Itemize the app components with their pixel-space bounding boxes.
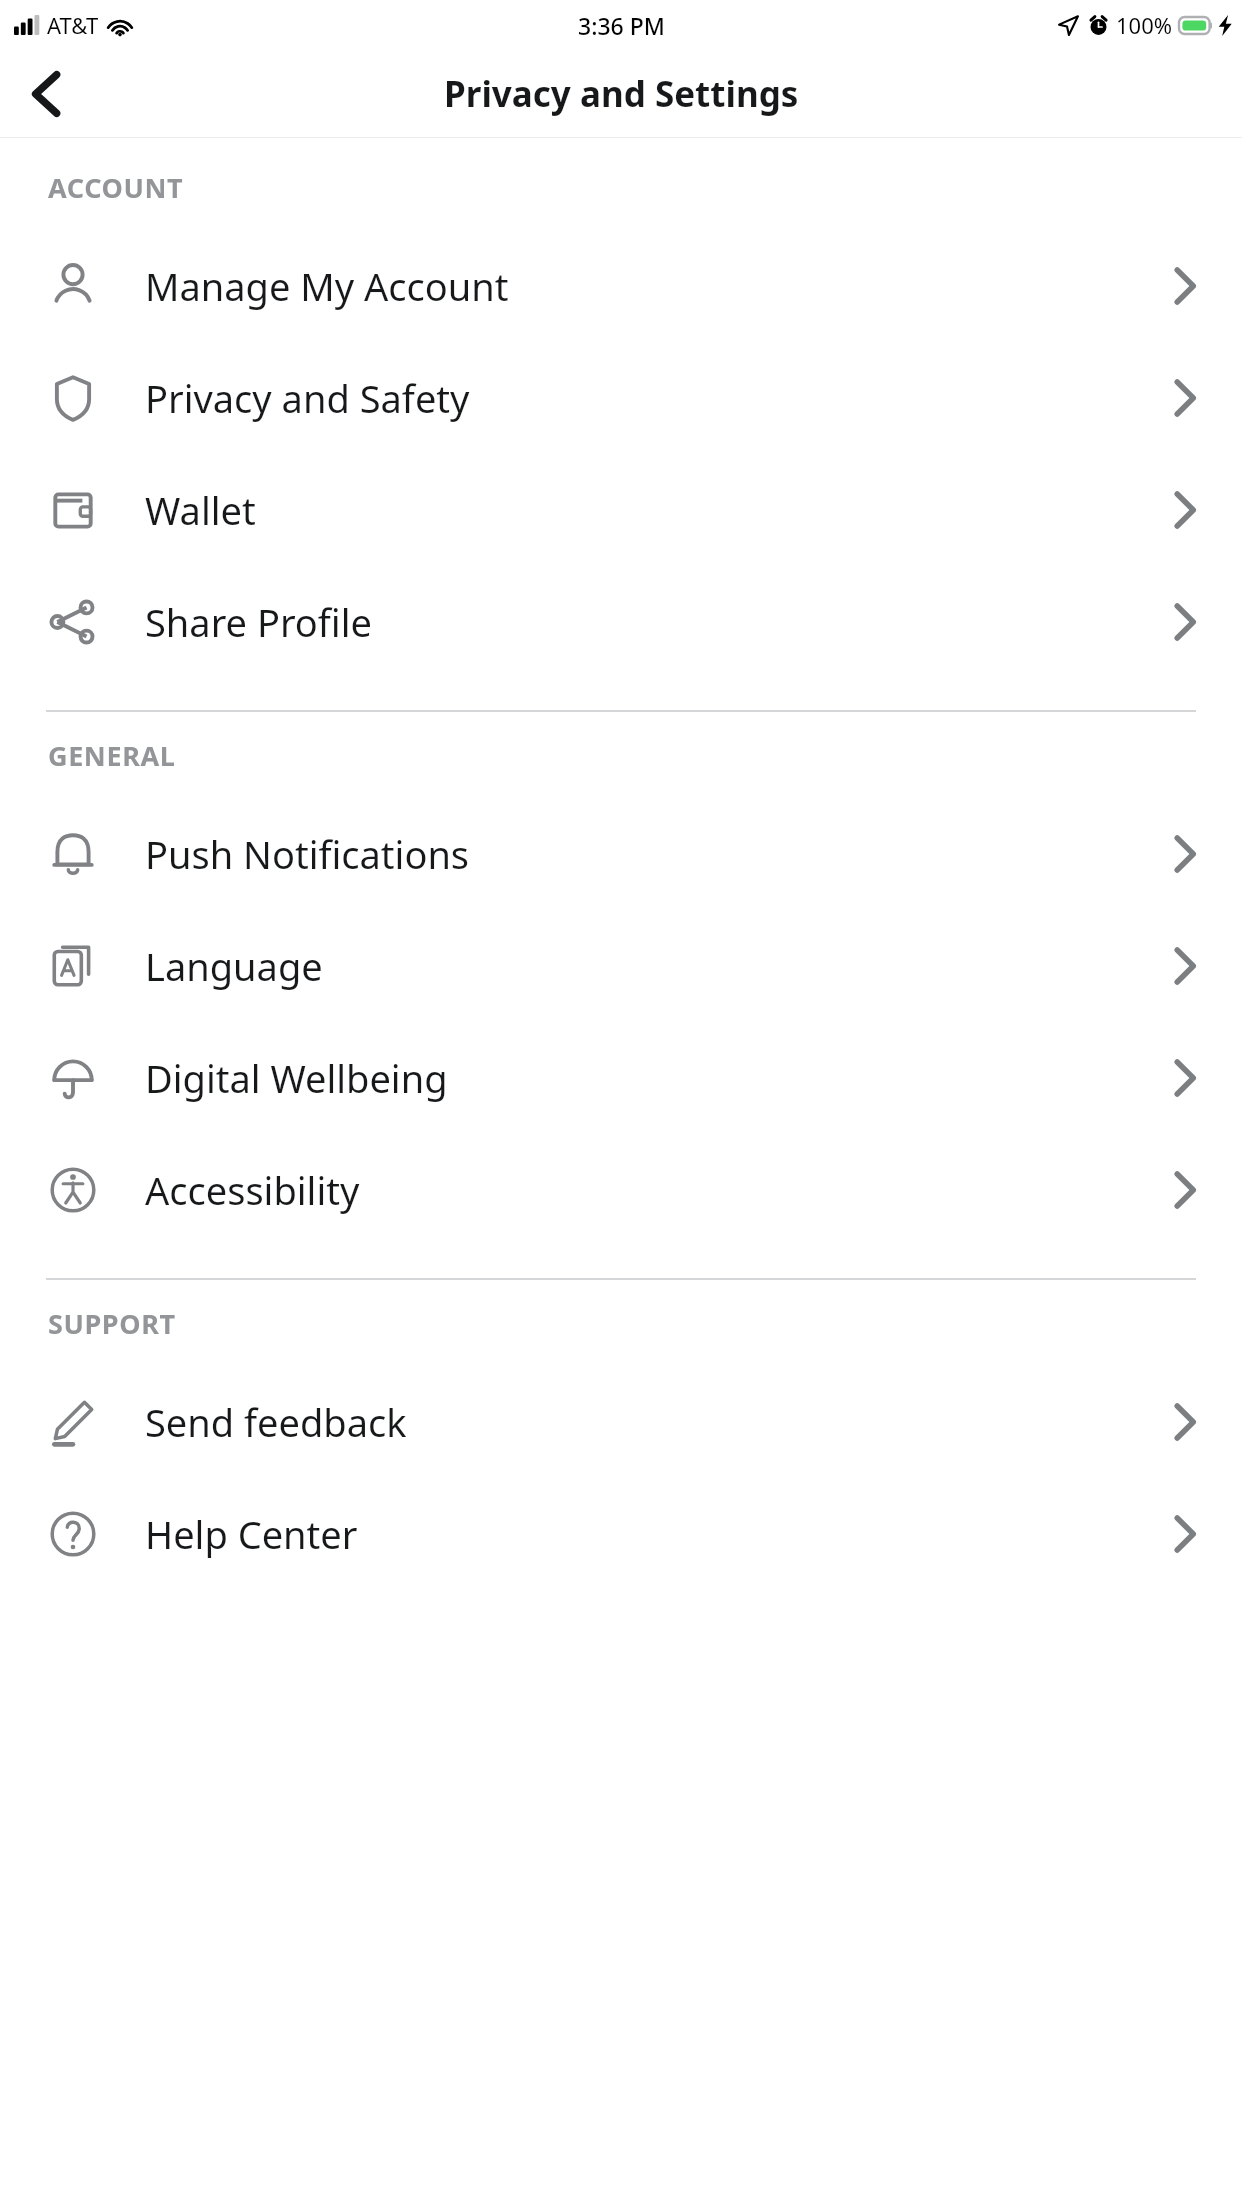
staticText: Push Notifications bbox=[145, 828, 470, 880]
staticText: Send feedback bbox=[145, 1396, 407, 1448]
staticText: AT&T bbox=[47, 10, 99, 40]
staticText: 100% bbox=[1116, 10, 1173, 40]
staticText: Language bbox=[145, 940, 323, 992]
staticText: 3:36 PM bbox=[578, 10, 665, 41]
staticText: Share Profile bbox=[145, 596, 372, 648]
button[interactable]: Push Notifications bbox=[0, 798, 1242, 910]
button[interactable]: Share Profile bbox=[0, 566, 1242, 678]
staticText: Help Center bbox=[145, 1508, 358, 1560]
button[interactable]: Language bbox=[0, 910, 1242, 1022]
staticText: Privacy and Settings bbox=[444, 70, 799, 118]
button[interactable]: Help Center bbox=[0, 1478, 1242, 1590]
staticText: GENERAL bbox=[48, 737, 176, 774]
staticText: Digital Wellbeing bbox=[145, 1052, 448, 1104]
button[interactable]: Privacy and Safety bbox=[0, 342, 1242, 454]
staticText: Manage My Account bbox=[145, 260, 509, 312]
staticText: Privacy and Safety bbox=[145, 372, 470, 424]
button[interactable]: Back bbox=[12, 59, 82, 129]
staticText: SUPPORT bbox=[48, 1305, 176, 1342]
button[interactable]: Manage My Account bbox=[0, 230, 1242, 342]
staticText: Wallet bbox=[145, 484, 256, 536]
staticText: ACCOUNT bbox=[48, 169, 184, 206]
staticText: Accessibility bbox=[145, 1164, 360, 1216]
button[interactable]: Accessibility bbox=[0, 1134, 1242, 1246]
button[interactable]: Wallet bbox=[0, 454, 1242, 566]
button[interactable]: Digital Wellbeing bbox=[0, 1022, 1242, 1134]
button[interactable]: Send feedback bbox=[0, 1366, 1242, 1478]
